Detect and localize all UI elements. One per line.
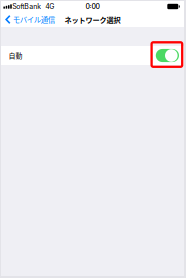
staticText: 4G — [45, 2, 54, 11]
staticText: SoftBank — [12, 2, 41, 11]
staticText: 0:00 — [85, 2, 99, 11]
staticText: モバイル通信 — [13, 14, 55, 25]
button[interactable]: 自動 — [156, 49, 179, 62]
staticText: ネットワーク選択 — [64, 14, 120, 25]
staticText: 自動 — [9, 50, 23, 60]
button[interactable]: モバイル通信 — [1, 12, 58, 27]
